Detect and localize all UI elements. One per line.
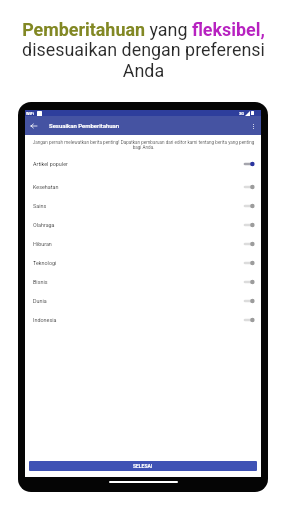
button[interactable]: Indonesia (25, 310, 261, 329)
button[interactable]: Toggle off (243, 219, 255, 231)
staticText: Pemberitahuan yang fleksibel, disesuaika… (6, 19, 281, 82)
staticText: Sesuaikan Pemberitahuan (49, 122, 120, 129)
staticText: Bisnis (33, 279, 243, 285)
button[interactable]: Dunia (25, 291, 261, 310)
button[interactable]: Toggle off (243, 200, 255, 212)
staticText: Hiburan (33, 241, 243, 247)
button[interactable]: Toggle off (243, 238, 255, 250)
button[interactable]: Hiburan (25, 234, 261, 253)
button[interactable]: Back (28, 120, 40, 132)
staticText: Teknologi (33, 260, 243, 266)
staticText: Dunia (33, 298, 243, 304)
staticText: Jangan pernah melewatkan berita penting!… (29, 140, 258, 150)
button[interactable]: Toggle off (243, 181, 255, 193)
button[interactable]: Artikel populer (25, 150, 261, 177)
button[interactable]: Toggle off (243, 295, 255, 307)
button[interactable]: Bisnis (25, 272, 261, 291)
staticText: Indonesia (33, 317, 243, 323)
button[interactable]: Sains (25, 196, 261, 215)
button[interactable]: Toggle off (243, 257, 255, 269)
button[interactable]: Teknologi (25, 253, 261, 272)
button[interactable]: Kesehatan (25, 177, 261, 196)
button[interactable]: More options (247, 120, 259, 132)
button[interactable]: Toggle off (243, 314, 255, 326)
staticText: WiFi (26, 111, 34, 116)
staticText: Kesehatan (33, 184, 243, 190)
button[interactable]: SELESAI (29, 461, 257, 471)
staticText: Olahraga (33, 222, 243, 228)
staticText: SELESAI (133, 463, 153, 469)
button[interactable]: Toggle on (243, 158, 255, 170)
staticText: Artikel populer (33, 161, 243, 167)
staticText: 3G (239, 111, 245, 116)
button[interactable]: Olahraga (25, 215, 261, 234)
button[interactable]: Toggle off (243, 276, 255, 288)
staticText: Sains (33, 203, 243, 209)
